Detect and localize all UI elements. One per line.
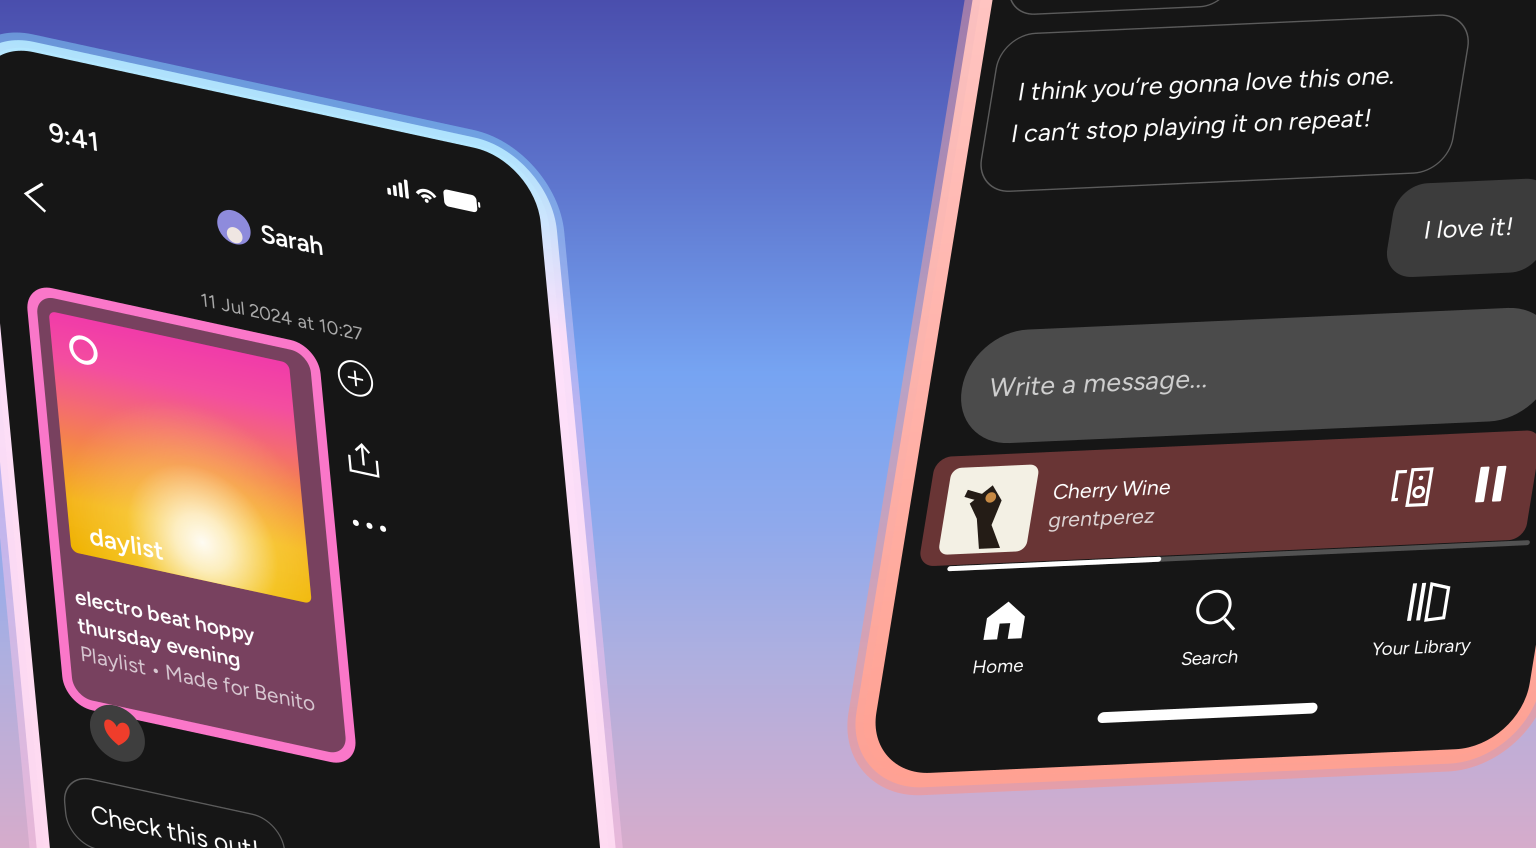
staticText: grentperez <box>1191 525 1297 551</box>
staticText: Write a message... <box>1110 384 1329 416</box>
button[interactable]: Write a message... <box>1082 343 1536 458</box>
button[interactable]: Search <box>1270 603 1482 713</box>
staticText: daylist <box>45 507 121 537</box>
staticText: Check this out! <box>19 792 192 822</box>
staticText: I can’t stop playing it on repeat! <box>1090 127 1451 157</box>
button[interactable]: Share <box>318 362 360 404</box>
staticText: 11 Jul 2024 at 10:27 <box>185 244 351 266</box>
staticText: 9:41 <box>43 101 94 133</box>
button[interactable]: Home <box>1058 603 1270 713</box>
button[interactable]: More options <box>317 442 361 458</box>
button[interactable]: Liked <box>27 691 83 747</box>
staticText: Check this out! <box>1090 0 1263 1</box>
staticText: Playlist • Made for Benito <box>24 632 264 658</box>
staticText: I love it! <box>1522 244 1536 274</box>
staticText: I think you’re gonna love this one. <box>1090 84 1467 115</box>
button[interactable]: Back <box>0 156 51 216</box>
button[interactable]: Add to playlist <box>317 280 361 324</box>
staticText: electro beat hoppy <box>24 575 208 601</box>
button[interactable]: Your Library <box>1482 603 1536 713</box>
staticText: thursday evening <box>24 604 191 629</box>
button[interactable]: Cherry Wine <box>1067 469 1536 580</box>
